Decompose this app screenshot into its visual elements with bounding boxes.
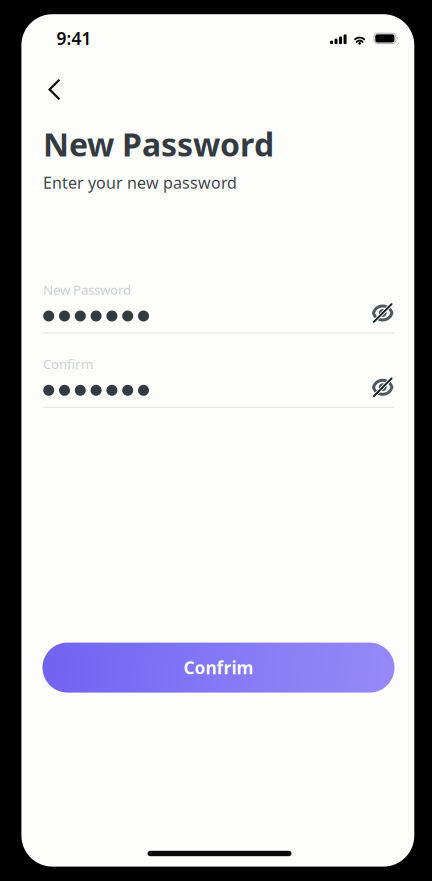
staticText: Enter your new password bbox=[43, 172, 237, 193]
staticText: New Password bbox=[43, 281, 131, 298]
staticText: Confirm bbox=[43, 355, 93, 373]
staticText: New Password bbox=[43, 123, 274, 165]
staticText: Confrim bbox=[183, 656, 253, 679]
button[interactable]: Show password bbox=[350, 298, 394, 328]
button[interactable]: Back bbox=[36, 72, 72, 106]
button[interactable]: Show password bbox=[350, 372, 394, 402]
staticText: 9:41 bbox=[56, 27, 91, 50]
button[interactable]: Confrim bbox=[42, 643, 394, 693]
